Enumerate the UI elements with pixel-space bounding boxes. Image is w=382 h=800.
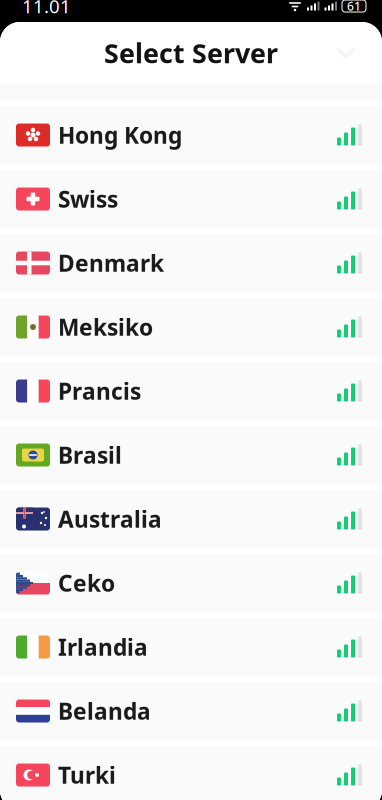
button[interactable]: Meksiko — [0, 298, 382, 356]
staticText: Irlandia — [58, 632, 148, 662]
button[interactable]: Australia — [0, 490, 382, 548]
staticText: Denmark — [58, 248, 164, 278]
button[interactable]: Hong Kong — [0, 106, 382, 164]
staticText: Meksiko — [58, 312, 153, 342]
button[interactable]: Denmark — [0, 234, 382, 292]
button[interactable]: Irlandia — [0, 618, 382, 676]
staticText: 61 — [347, 0, 361, 14]
button[interactable]: Brasil — [0, 426, 382, 484]
staticText: Hong Kong — [58, 120, 182, 150]
staticText: Australia — [58, 504, 162, 534]
staticText: 11.01 — [22, 0, 71, 18]
button[interactable]: Prancis — [0, 362, 382, 420]
button[interactable]: Swiss — [0, 170, 382, 228]
staticText: Ceko — [58, 568, 115, 598]
staticText: Brasil — [58, 440, 122, 470]
staticText: Swiss — [58, 184, 118, 214]
button[interactable]: Ceko — [0, 554, 382, 612]
staticText: Belanda — [58, 696, 151, 726]
staticText: Prancis — [58, 376, 141, 406]
staticText: Turki — [58, 760, 116, 790]
staticText: Select Server — [104, 35, 278, 71]
button[interactable]: Turki — [0, 746, 382, 800]
button[interactable]: Belanda — [0, 682, 382, 740]
